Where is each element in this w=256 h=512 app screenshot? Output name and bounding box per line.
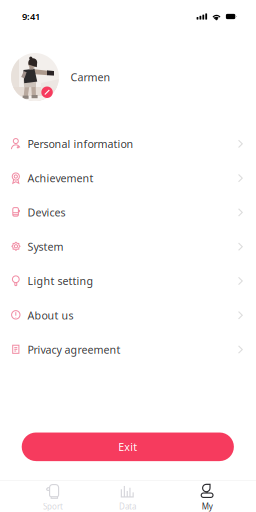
staticText: Exit [118,440,137,454]
staticText: Sport [43,501,63,512]
button[interactable]: My [169,485,246,511]
button[interactable]: Exit [22,432,234,461]
staticText: Light setting [27,274,93,288]
button[interactable]: Data [92,485,169,511]
staticText: 9:41 [22,10,40,23]
button[interactable]: Light setting [0,264,256,298]
staticText: My [202,501,213,512]
button[interactable]: Achievement [0,161,256,195]
staticText: System [27,240,63,254]
button[interactable]: Devices [0,195,256,230]
button[interactable]: Sport [14,485,92,511]
staticText: Privacy agreement [27,342,120,357]
staticText: Achievement [27,171,93,185]
button[interactable]: Privacy agreement [0,332,256,367]
staticText: Personal information [27,137,133,151]
staticText: About us [27,308,73,322]
staticText: Devices [27,205,65,219]
button[interactable]: Personal information [0,127,256,161]
button[interactable]: System [0,229,256,264]
staticText: Carmen [70,70,110,84]
staticText: Data [119,501,136,512]
button[interactable]: About us [0,298,256,332]
